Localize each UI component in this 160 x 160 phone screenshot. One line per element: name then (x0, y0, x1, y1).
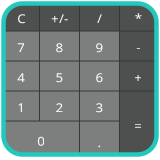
button[interactable]: + (120, 61, 156, 90)
staticText: = (134, 117, 142, 134)
button[interactable]: 1 (3, 91, 39, 120)
button[interactable]: 9 (80, 31, 119, 60)
staticText: C (17, 9, 25, 27)
button[interactable]: - (120, 31, 156, 60)
button[interactable]: * (120, 3, 156, 30)
staticText: 7 (17, 38, 25, 56)
button[interactable]: / (80, 3, 119, 30)
button[interactable]: C (3, 3, 39, 30)
staticText: 2 (55, 98, 63, 116)
staticText: 5 (55, 68, 63, 86)
staticText: / (97, 9, 102, 27)
staticText: 9 (95, 38, 103, 56)
button[interactable]: 7 (3, 31, 39, 60)
button[interactable]: = (120, 91, 156, 154)
staticText: 0 (37, 132, 45, 149)
button[interactable]: 8 (40, 31, 79, 60)
staticText: + (134, 68, 142, 86)
button[interactable]: 5 (40, 61, 79, 90)
button[interactable]: 6 (80, 61, 119, 90)
staticText: 8 (55, 38, 63, 56)
button[interactable]: 2 (40, 91, 79, 120)
staticText: - (136, 38, 140, 56)
staticText: +/- (51, 9, 68, 27)
staticText: 4 (17, 68, 25, 86)
staticText: * (135, 9, 142, 27)
staticText: 3 (95, 98, 103, 116)
staticText: 6 (95, 68, 103, 86)
button[interactable]: 4 (3, 61, 39, 90)
button[interactable]: +/- (40, 3, 79, 30)
button[interactable]: 3 (80, 91, 119, 120)
staticText: 1 (17, 98, 25, 116)
staticText: . (97, 133, 101, 151)
button[interactable]: . (80, 121, 119, 154)
button[interactable]: 0 (3, 121, 79, 154)
